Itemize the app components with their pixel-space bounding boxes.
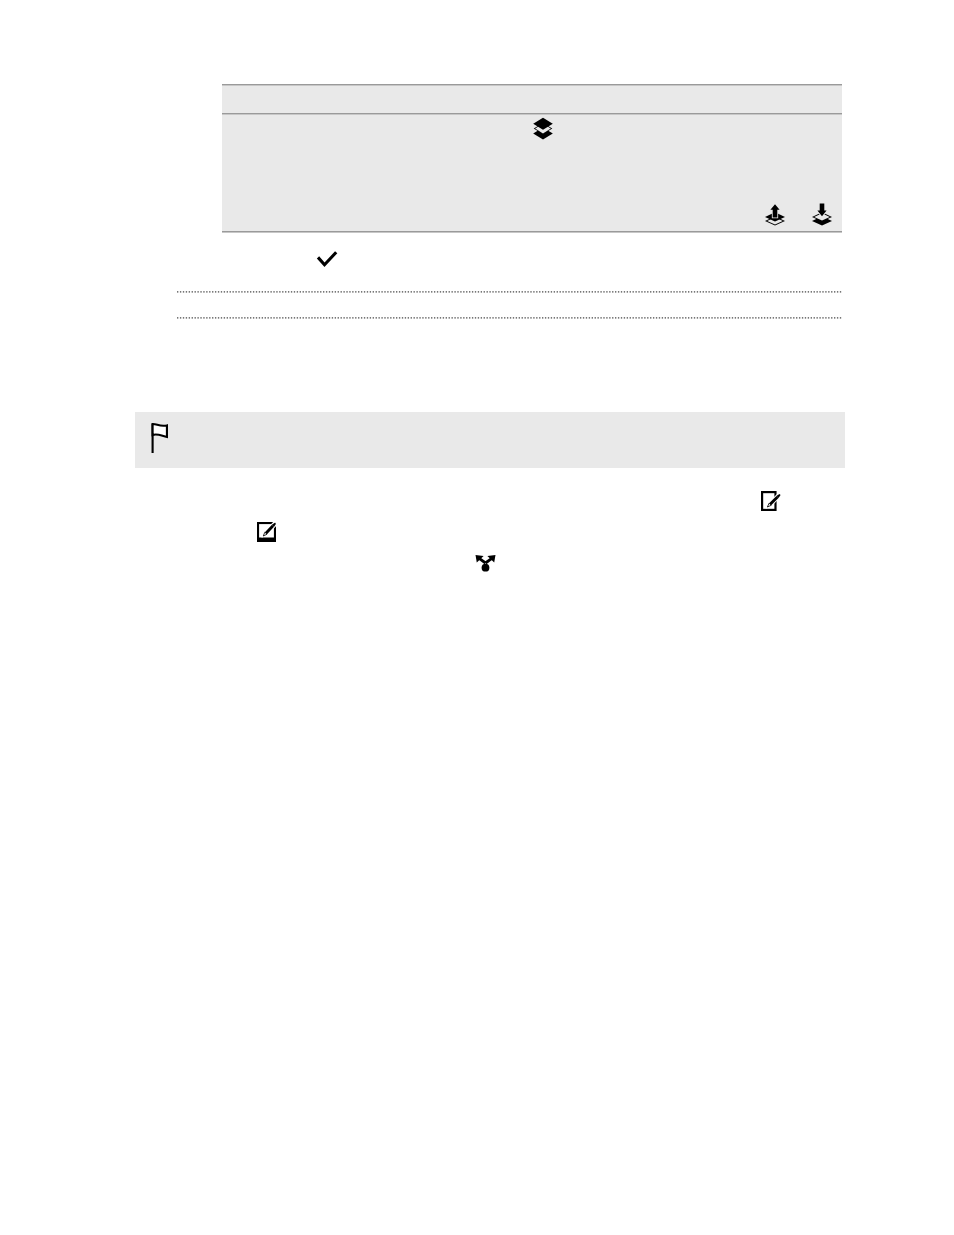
button[interactable]: Border color xyxy=(257,522,276,542)
button[interactable]: Branch xyxy=(475,554,496,572)
button[interactable]: Send to back xyxy=(812,203,832,225)
button[interactable]: Layers xyxy=(533,118,553,139)
button[interactable]: Edit note xyxy=(761,491,780,511)
button[interactable]: Done xyxy=(317,251,337,267)
button[interactable]: Flag xyxy=(151,423,168,453)
button[interactable]: Bring to front xyxy=(765,203,785,225)
